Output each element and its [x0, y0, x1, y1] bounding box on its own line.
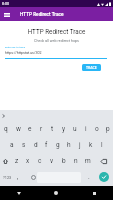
button[interactable]: k [85, 137, 96, 153]
staticText: m [85, 157, 91, 165]
staticText: u [73, 125, 77, 133]
button[interactable]: p [102, 121, 113, 137]
button[interactable]: q [0, 121, 12, 137]
staticText: g [56, 141, 60, 149]
button[interactable]: w [12, 121, 24, 137]
button[interactable]: x [22, 153, 34, 169]
button[interactable]: e [24, 121, 36, 137]
staticText: z [15, 157, 19, 165]
staticText: 8:00 [2, 2, 9, 6]
button[interactable]: More suggestions [0, 112, 7, 119]
button[interactable]: a [6, 137, 18, 153]
button[interactable]: Menu [1, 9, 13, 21]
staticText: , [17, 173, 19, 181]
staticText: HTTP Redirect Trace [0, 28, 113, 35]
button[interactable]: Back [0, 186, 37, 200]
button[interactable]: o [91, 121, 102, 137]
button[interactable]: j [74, 137, 85, 153]
staticText: w [16, 125, 21, 133]
staticText: e [28, 125, 32, 133]
button[interactable]: Shift [0, 153, 11, 169]
staticText: s [22, 141, 26, 149]
button[interactable]: b [58, 153, 70, 169]
staticText: d [34, 141, 38, 149]
staticText: Enter URL to trace [5, 46, 25, 49]
button[interactable]: c [34, 153, 46, 169]
button[interactable]: y [58, 121, 69, 137]
staticText: TRACE [86, 66, 97, 70]
button[interactable]: n [70, 153, 82, 169]
staticText: f [45, 141, 48, 149]
button[interactable]: d [30, 137, 41, 153]
button[interactable]: TRACE [82, 64, 101, 71]
staticText: https://httpstat.us/302 [5, 51, 42, 55]
staticText: t [51, 125, 54, 133]
button[interactable]: z [11, 153, 22, 169]
staticText: k [89, 141, 93, 149]
button[interactable]: r [36, 121, 47, 137]
staticText: x [26, 157, 30, 165]
staticText: r [40, 125, 43, 133]
staticText: ?123 [3, 175, 12, 179]
staticText: b [62, 157, 66, 165]
staticText: a [10, 141, 14, 149]
button[interactable]: h [63, 137, 74, 153]
staticText: v [50, 157, 54, 165]
staticText: p [106, 125, 110, 133]
button[interactable]: . [83, 169, 95, 185]
button[interactable]: ?123 [0, 169, 14, 185]
button[interactable]: t [47, 121, 58, 137]
button[interactable]: s [18, 137, 30, 153]
staticText: HTTP Redirect Trace [20, 12, 64, 18]
button[interactable]: Recents [75, 186, 113, 200]
button[interactable]: Backspace [94, 153, 113, 169]
staticText: j [79, 141, 81, 149]
staticText: h [67, 141, 71, 149]
button[interactable]: u [69, 121, 80, 137]
staticText: c [38, 157, 42, 165]
button[interactable]: i [80, 121, 91, 137]
staticText: q [4, 125, 8, 133]
staticText: i [85, 125, 87, 133]
staticText: Check all web redirect hops [0, 39, 113, 43]
button[interactable]: Home [37, 186, 75, 200]
staticText: y [62, 125, 66, 133]
button[interactable]: m [82, 153, 94, 169]
button[interactable]: f [41, 137, 52, 153]
button[interactable]: Emoji [27, 169, 39, 185]
staticText: . [88, 173, 90, 181]
staticText: l [101, 141, 103, 149]
button[interactable]: v [46, 153, 58, 169]
button[interactable]: l [96, 137, 107, 153]
staticText: n [74, 157, 78, 165]
staticText: o [95, 125, 99, 133]
button[interactable]: , [12, 169, 24, 185]
button[interactable]: Done [95, 169, 113, 185]
button[interactable]: g [52, 137, 63, 153]
